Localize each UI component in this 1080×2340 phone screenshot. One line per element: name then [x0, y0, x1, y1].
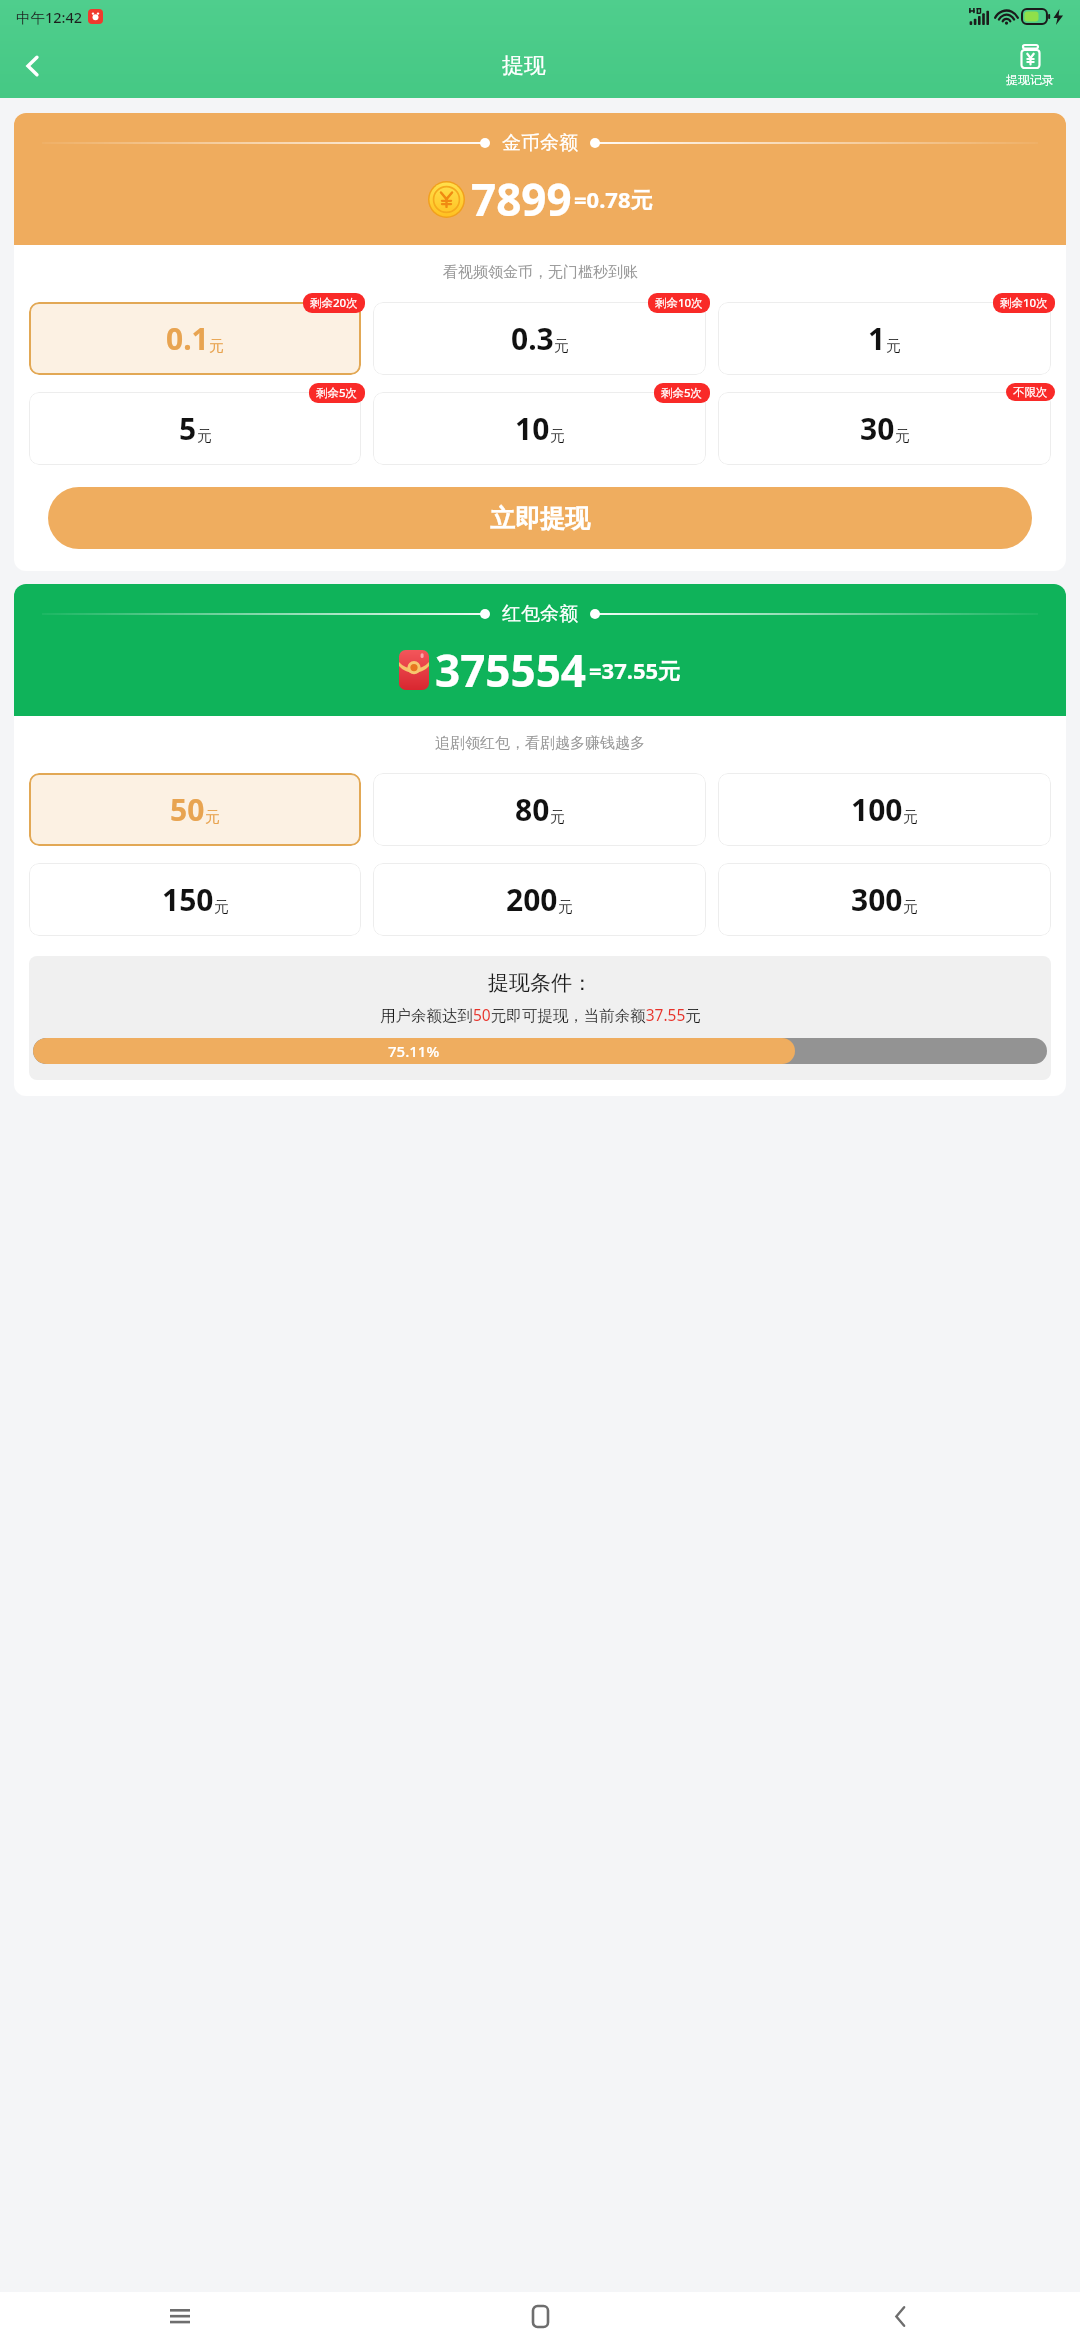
staticText: 150 [162, 879, 214, 920]
staticText: 300 [851, 879, 903, 920]
staticText: 5 [179, 408, 197, 449]
staticText: 1 [868, 318, 886, 359]
button[interactable]: 100 [718, 773, 1051, 846]
staticText: 10 [515, 408, 550, 449]
staticText: 0.3 [511, 318, 554, 359]
button[interactable]: Recents [0, 2292, 360, 2340]
staticText: 元 [886, 337, 901, 356]
button[interactable]: Back [10, 43, 56, 89]
staticText: 提现记录 [1006, 72, 1054, 87]
button[interactable]: 立即提现 [48, 487, 1032, 549]
staticText: 中午12:42 [16, 7, 83, 27]
button[interactable]: 1 [718, 302, 1051, 375]
staticText: 不限次 [1013, 385, 1048, 399]
staticText: 元 [903, 808, 918, 827]
staticText: 剩余5次 [316, 385, 358, 401]
staticText: 元 [197, 427, 212, 446]
staticText: 剩余10次 [1000, 295, 1048, 311]
staticText: 375554 [435, 640, 587, 700]
staticText: 元 [895, 427, 910, 446]
button[interactable]: 150 [29, 863, 361, 936]
staticText: 元 [550, 427, 565, 446]
staticText: 100 [851, 789, 903, 830]
staticText: 75.11% [388, 1041, 440, 1061]
button[interactable]: 5 [29, 392, 361, 465]
button[interactable]: 提现记录 [992, 45, 1068, 87]
staticText: =0.78元 [574, 184, 653, 214]
button[interactable]: 300 [718, 863, 1051, 936]
staticText: =37.55元 [589, 655, 681, 685]
staticText: 剩余20次 [310, 295, 358, 311]
staticText: 用户余额达到50元即可提现，当前余额37.55元 [380, 1004, 701, 1025]
staticText: 元 [554, 337, 569, 356]
button[interactable]: Home [360, 2292, 720, 2340]
staticText: 7899 [471, 169, 572, 229]
staticText: 红包余额 [502, 602, 578, 626]
staticText: 元 [214, 898, 229, 917]
staticText: 剩余10次 [655, 295, 703, 311]
button[interactable]: 80 [373, 773, 706, 846]
staticText: 30 [860, 408, 895, 449]
staticText: 元 [903, 898, 918, 917]
staticText: 元 [209, 337, 224, 356]
staticText: 元 [205, 808, 220, 827]
staticText: 提现 [502, 52, 546, 80]
staticText: 200 [506, 879, 558, 920]
staticText: 剩余5次 [661, 385, 703, 401]
button[interactable]: 0.3 [373, 302, 706, 375]
staticText: 金币余额 [502, 131, 578, 155]
staticText: 0.1 [166, 318, 209, 359]
staticText: 80 [515, 789, 550, 830]
staticText: 立即提现 [490, 503, 590, 534]
staticText: 元 [550, 808, 565, 827]
button[interactable]: Back [720, 2292, 1080, 2340]
staticText: 追剧领红包，看剧越多赚钱越多 [435, 734, 645, 753]
staticText: 提现条件： [488, 970, 593, 996]
staticText: 50 [170, 789, 205, 830]
button[interactable]: 10 [373, 392, 706, 465]
staticText: 看视频领金币，无门槛秒到账 [443, 263, 638, 282]
button[interactable]: 30 [718, 392, 1051, 465]
button[interactable]: 0.1 [29, 302, 361, 375]
staticText: 元 [558, 898, 573, 917]
button[interactable]: 200 [373, 863, 706, 936]
button[interactable]: 50 [29, 773, 361, 846]
